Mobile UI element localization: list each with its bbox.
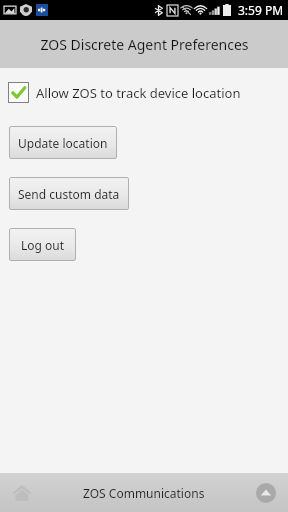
staticText: 3:59 PM bbox=[238, 2, 284, 18]
staticText: Allow ZOS to track device location bbox=[36, 84, 241, 102]
button[interactable]: Log out bbox=[9, 228, 76, 261]
button[interactable]: Allow ZOS to track device location bbox=[0, 80, 288, 105]
button[interactable]: Expand bbox=[244, 473, 288, 512]
staticText: Update location bbox=[18, 135, 108, 151]
button[interactable]: Send custom data bbox=[9, 177, 129, 210]
button[interactable]: Home bbox=[0, 473, 44, 512]
staticText: Log out bbox=[21, 237, 65, 253]
staticText: ZOS Discrete Agent Preferences bbox=[40, 35, 249, 54]
button[interactable]: Update location bbox=[9, 126, 117, 159]
staticText: Send custom data bbox=[18, 186, 120, 202]
staticText: ZOS Communications bbox=[83, 485, 205, 501]
